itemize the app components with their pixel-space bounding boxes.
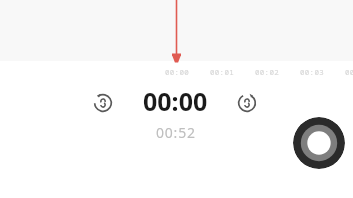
button[interactable]: Forward 3 seconds	[234, 90, 260, 116]
staticText: 00:00	[157, 67, 197, 77]
button[interactable]: Record	[293, 117, 345, 169]
staticText: 00:01	[202, 67, 242, 77]
staticText: 00:02	[247, 67, 287, 77]
staticText: 00:52	[156, 123, 196, 140]
staticText: 00:03	[292, 67, 332, 77]
staticText: 00:00	[143, 84, 208, 118]
staticText: 00:04	[337, 67, 353, 77]
button[interactable]: Rewind 3 seconds	[90, 90, 116, 116]
